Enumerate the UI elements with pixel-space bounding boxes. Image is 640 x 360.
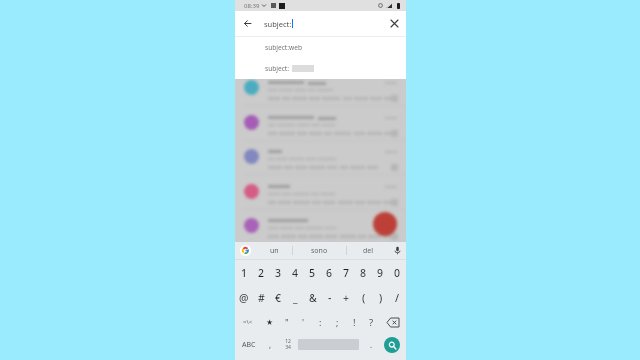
- button[interactable]: Back: [235, 11, 260, 36]
- staticText: ': [302, 316, 305, 328]
- staticText: un: [270, 246, 279, 256]
- button[interactable]: #: [253, 285, 270, 310]
- staticText: 3: [275, 266, 282, 280]
- staticText: &: [309, 291, 317, 305]
- button[interactable]: sono: [293, 242, 346, 259]
- staticText: 4: [292, 266, 299, 280]
- staticText: ": [285, 316, 289, 328]
- button[interactable]: .: [359, 334, 383, 355]
- staticText: €: [275, 291, 282, 305]
- button[interactable]: 0: [389, 260, 406, 285]
- button[interactable]: _: [287, 285, 304, 310]
- button[interactable]: [235, 177, 406, 212]
- staticText: !: [353, 316, 356, 329]
- button[interactable]: &: [304, 285, 321, 310]
- button[interactable]: ': [295, 310, 312, 334]
- button[interactable]: ": [278, 310, 295, 334]
- staticText: #: [258, 291, 265, 305]
- button[interactable]: +: [338, 285, 355, 310]
- button[interactable]: 6: [321, 260, 338, 285]
- button[interactable]: =\<: [235, 310, 261, 334]
- button[interactable]: un: [256, 242, 292, 259]
- button[interactable]: Space: [298, 334, 359, 355]
- staticText: 12 34: [285, 338, 291, 351]
- button[interactable]: del: [347, 242, 389, 259]
- button[interactable]: subject:: [235, 58, 406, 79]
- button[interactable]: €: [270, 285, 287, 310]
- staticText: ?: [369, 316, 374, 329]
- button[interactable]: /: [389, 285, 406, 310]
- button[interactable]: 3: [270, 260, 287, 285]
- staticText: 1: [241, 266, 248, 280]
- staticText: 5: [309, 266, 316, 280]
- staticText: /: [395, 291, 400, 305]
- button[interactable]: ?: [363, 310, 380, 334]
- staticText: =\<: [243, 318, 253, 326]
- staticText: 8: [360, 266, 367, 280]
- staticText: 9: [377, 266, 384, 280]
- button[interactable]: ): [372, 285, 389, 310]
- button[interactable]: 9: [372, 260, 389, 285]
- button[interactable]: 2: [253, 260, 270, 285]
- staticText: ★: [266, 318, 274, 327]
- staticText: ,: [269, 339, 272, 350]
- staticText: -: [328, 291, 332, 305]
- staticText: 08:39: [244, 2, 260, 10]
- button[interactable]: [235, 211, 406, 246]
- button[interactable]: @: [235, 285, 253, 310]
- button[interactable]: Search: [383, 334, 400, 355]
- staticText: .: [370, 339, 373, 350]
- staticText: 0: [394, 266, 401, 280]
- button[interactable]: Clear search: [382, 11, 407, 36]
- button[interactable]: [235, 142, 406, 177]
- staticText: sono: [311, 246, 328, 256]
- button[interactable]: ABC: [235, 334, 263, 355]
- button[interactable]: ,: [263, 334, 277, 355]
- button[interactable]: [235, 108, 406, 143]
- button[interactable]: Backspace: [380, 310, 406, 334]
- button[interactable]: 1: [235, 260, 253, 285]
- staticText: subject:: [264, 19, 292, 29]
- button[interactable]: 8: [355, 260, 372, 285]
- staticText: ): [379, 291, 383, 305]
- button[interactable]: 7: [338, 260, 355, 285]
- staticText: +: [343, 291, 350, 305]
- button[interactable]: Voice input: [389, 242, 406, 259]
- button[interactable]: Google: [235, 242, 256, 259]
- button[interactable]: [235, 73, 406, 108]
- button[interactable]: 4: [287, 260, 304, 285]
- button[interactable]: !: [346, 310, 363, 334]
- button[interactable]: Compose: [373, 212, 397, 236]
- staticText: ABC: [242, 340, 256, 350]
- staticText: @: [239, 291, 249, 305]
- button[interactable]: ★: [261, 310, 278, 334]
- staticText: subject:: [265, 64, 290, 73]
- button[interactable]: subject:web: [235, 37, 406, 58]
- button[interactable]: 5: [304, 260, 321, 285]
- staticText: del: [363, 246, 374, 256]
- button[interactable]: -: [321, 285, 338, 310]
- staticText: 6: [326, 266, 333, 280]
- button[interactable]: 12 34: [277, 334, 299, 355]
- staticText: (: [362, 291, 366, 305]
- staticText: _: [293, 291, 298, 305]
- button[interactable]: :: [312, 310, 329, 334]
- button[interactable]: (: [355, 285, 372, 310]
- staticText: 7: [343, 266, 350, 280]
- staticText: :: [319, 316, 322, 328]
- staticText: 2: [258, 266, 265, 280]
- staticText: subject:web: [265, 43, 302, 52]
- staticText: ;: [336, 316, 339, 328]
- button[interactable]: ;: [329, 310, 346, 334]
